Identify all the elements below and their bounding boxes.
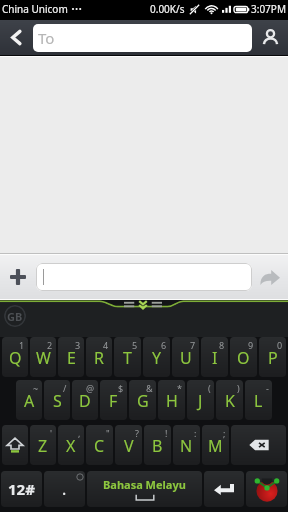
button[interactable]: 3 (58, 337, 84, 377)
button[interactable]: Language GB (4, 305, 26, 327)
staticText: , (78, 427, 81, 439)
button[interactable]: * (158, 380, 185, 420)
staticText: 3:07PM (251, 2, 286, 16)
staticText: D (79, 390, 91, 412)
button[interactable]: ; (202, 425, 229, 465)
staticText: X (66, 435, 76, 457)
button[interactable]: 5 (114, 337, 141, 377)
staticText: F (109, 390, 118, 412)
staticText: H (166, 390, 178, 412)
button[interactable]: 12# (1, 471, 42, 507)
staticText: . (62, 478, 67, 500)
button[interactable]: 4 (86, 337, 112, 377)
staticText: 0 (277, 339, 283, 351)
staticText: To (38, 28, 55, 48)
staticText: E (67, 347, 76, 369)
button[interactable]: / (44, 380, 70, 420)
staticText: O (237, 347, 250, 369)
staticText: 0.00K/s (150, 2, 185, 16)
staticText: ( (208, 382, 211, 394)
staticText: 2 (47, 339, 53, 351)
button[interactable]: Send (252, 255, 288, 299)
staticText: : (194, 427, 197, 439)
staticText: 3 (75, 339, 81, 351)
button[interactable]: Keyboard app (246, 471, 287, 507)
button[interactable]: ( (187, 380, 214, 420)
staticText: W (36, 347, 51, 369)
staticText: 12# (8, 479, 35, 499)
button[interactable]: $ (100, 380, 127, 420)
staticText: ) (237, 382, 240, 394)
staticText: ; (223, 427, 226, 439)
button[interactable]: - (245, 380, 272, 420)
staticText: Q (9, 347, 22, 369)
staticText: J (198, 390, 203, 412)
button[interactable]: 0 (259, 337, 286, 377)
button[interactable]: 9 (230, 337, 257, 377)
button[interactable]: ' (30, 425, 56, 465)
button[interactable]: ~ (16, 380, 42, 420)
staticText: K (225, 390, 235, 412)
staticText: 8 (219, 339, 225, 351)
button[interactable]: : (173, 425, 200, 465)
staticText: / (63, 382, 67, 394)
button[interactable]: " (86, 425, 113, 465)
staticText: G (137, 390, 149, 412)
staticText: Y (152, 347, 162, 369)
staticText: Bahasa Melayu (103, 477, 186, 492)
staticText: N (180, 435, 193, 457)
button[interactable]: 8 (201, 337, 228, 377)
staticText: M (208, 435, 223, 457)
button[interactable]: ! (144, 425, 171, 465)
button[interactable] (36, 263, 252, 291)
button[interactable]: Add attachment (0, 255, 36, 299)
staticText: T (123, 347, 132, 369)
staticText: U (180, 347, 192, 369)
staticText: GB (7, 309, 23, 324)
staticText: V (124, 435, 134, 457)
staticText: 6 (161, 339, 167, 351)
button[interactable]: @ (72, 380, 98, 420)
button[interactable]: To (33, 24, 252, 52)
staticText: & (146, 382, 153, 394)
staticText: @ (86, 382, 95, 394)
staticText: $ (118, 382, 124, 394)
button[interactable]: ? (115, 425, 142, 465)
staticText: 9 (248, 339, 254, 351)
staticText: I (212, 347, 218, 369)
button[interactable]: Back (0, 20, 33, 55)
staticText: 5 (132, 339, 138, 351)
button[interactable]: Enter (204, 471, 244, 507)
staticText: - (266, 382, 269, 394)
staticText: China Unicom (2, 2, 68, 16)
button[interactable]: 1 (2, 337, 28, 377)
staticText: B (152, 435, 163, 457)
staticText: C (94, 435, 105, 457)
staticText: 4 (103, 339, 109, 351)
staticText: S (53, 390, 62, 412)
button[interactable]: , (58, 425, 84, 465)
button[interactable]: Contacts (252, 20, 288, 55)
staticText: * (177, 382, 182, 394)
button[interactable]: ) (216, 380, 243, 420)
button[interactable]: & (129, 380, 156, 420)
button[interactable]: Bahasa Melayu (87, 471, 202, 507)
staticText: 7 (190, 339, 196, 351)
staticText: Z (38, 435, 48, 457)
staticText: ' (50, 427, 53, 439)
staticText: ? (135, 427, 139, 439)
staticText: P (268, 347, 278, 369)
button[interactable]: Backspace (231, 425, 286, 465)
staticText: 1 (19, 339, 25, 351)
staticText: " (106, 427, 110, 439)
button[interactable]: 7 (172, 337, 199, 377)
button[interactable]: . (44, 471, 85, 507)
staticText: L (254, 390, 263, 412)
staticText: R (94, 347, 104, 369)
staticText: ! (165, 427, 168, 439)
button[interactable]: 2 (30, 337, 56, 377)
staticText: A (24, 390, 35, 412)
staticText: ~ (33, 382, 39, 394)
button[interactable]: 6 (143, 337, 170, 377)
button[interactable]: Shift (2, 425, 28, 465)
